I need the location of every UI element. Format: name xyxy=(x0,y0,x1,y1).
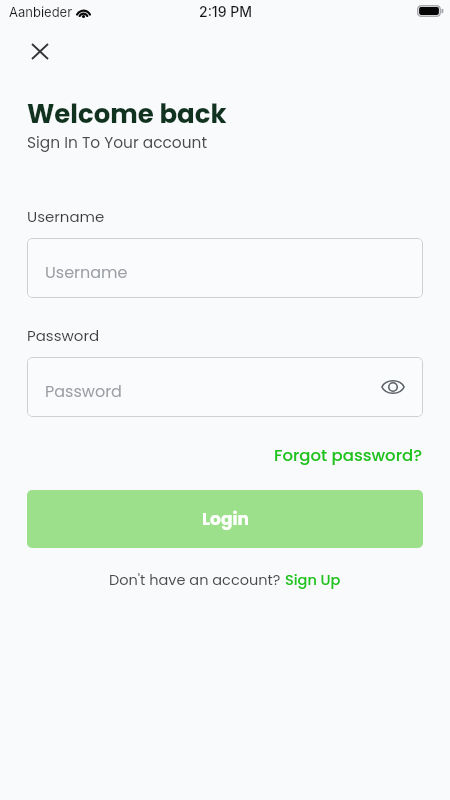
button[interactable]: Sign Up xyxy=(285,570,341,590)
staticText: Username xyxy=(27,206,105,227)
button[interactable]: Username xyxy=(27,238,423,298)
staticText: Welcome back xyxy=(27,96,227,132)
staticText: Sign In To Your account xyxy=(27,132,207,154)
button[interactable]: Login xyxy=(27,490,423,548)
staticText: Don't have an account? xyxy=(109,570,285,590)
staticText: Forgot password? xyxy=(274,444,423,467)
staticText: 2:19 PM xyxy=(199,3,252,20)
staticText: Password xyxy=(45,380,122,402)
staticText: Login xyxy=(202,507,249,531)
staticText: Aanbieder xyxy=(9,4,73,20)
staticText: Username xyxy=(45,261,128,283)
button[interactable]: Password xyxy=(27,357,423,417)
button[interactable]: Show password xyxy=(377,371,409,403)
button[interactable]: Close xyxy=(18,29,62,73)
staticText: Sign Up xyxy=(285,570,341,590)
button[interactable]: Forgot password? xyxy=(274,444,423,467)
staticText: Password xyxy=(27,325,100,346)
